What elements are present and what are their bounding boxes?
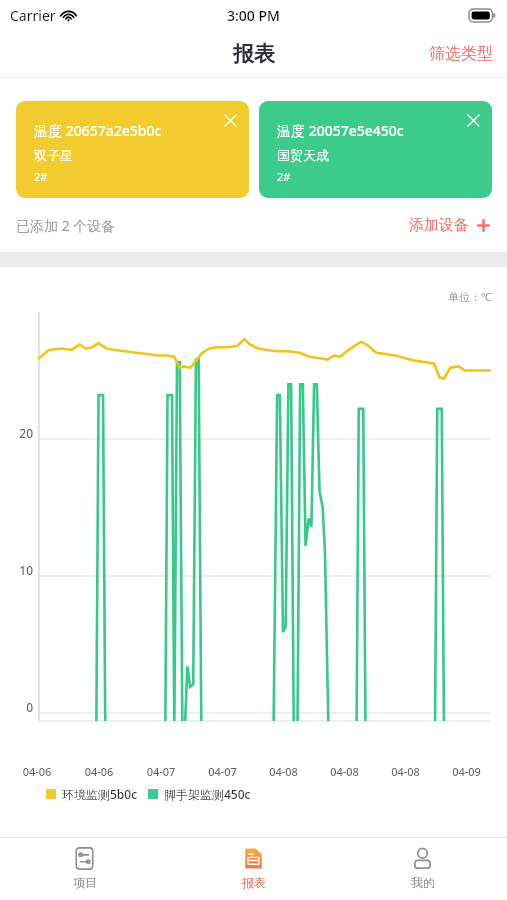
button[interactable]: 项目 xyxy=(0,838,169,900)
staticText: 04-06 xyxy=(6,764,68,779)
staticText: 双子星 xyxy=(34,147,73,163)
staticText: 04-09 xyxy=(436,764,497,779)
button[interactable]: Remove device xyxy=(460,107,486,133)
staticText: 已添加 2 个设备 xyxy=(16,216,116,235)
staticText: 温度 20657a2e5b0c xyxy=(34,121,162,140)
staticText: 2# xyxy=(34,169,48,184)
button[interactable]: 筛选类型 xyxy=(415,36,507,72)
staticText: 项目 xyxy=(73,875,97,890)
staticText: 温度 20057e5e450c xyxy=(277,121,404,140)
staticText: 20 xyxy=(0,425,33,441)
staticText: 添加设备 xyxy=(409,216,469,235)
button[interactable]: 我的 xyxy=(338,838,507,900)
staticText: 10 xyxy=(0,562,33,578)
staticText: 3:00 PM xyxy=(227,6,280,25)
staticText: 0 xyxy=(0,699,33,715)
staticText: 04-07 xyxy=(192,764,253,779)
staticText: 04-08 xyxy=(253,764,314,779)
staticText: 我的 xyxy=(411,875,435,890)
staticText: 单位：℃ xyxy=(448,289,492,304)
button[interactable]: Remove device xyxy=(217,107,243,133)
button[interactable]: 温度 20657a2e5b0c xyxy=(16,101,249,198)
staticText: 国贸天成 xyxy=(277,147,329,163)
staticText: 脚手架监测450c xyxy=(164,786,251,802)
staticText: 报表 xyxy=(242,875,266,890)
button[interactable]: 报表 xyxy=(169,838,338,900)
staticText: 04-06 xyxy=(68,764,130,779)
staticText: 04-07 xyxy=(130,764,192,779)
staticText: 04-08 xyxy=(375,764,436,779)
staticText: Carrier xyxy=(10,6,56,25)
button[interactable]: 温度 20057e5e450c xyxy=(259,101,492,198)
staticText: 筛选类型 xyxy=(429,44,493,64)
staticText: 2# xyxy=(277,169,291,184)
staticText: 环境监测5b0c xyxy=(62,786,138,802)
staticText: 04-08 xyxy=(314,764,375,779)
button[interactable]: 添加设备 xyxy=(409,210,491,241)
staticText: 报表 xyxy=(233,41,275,67)
